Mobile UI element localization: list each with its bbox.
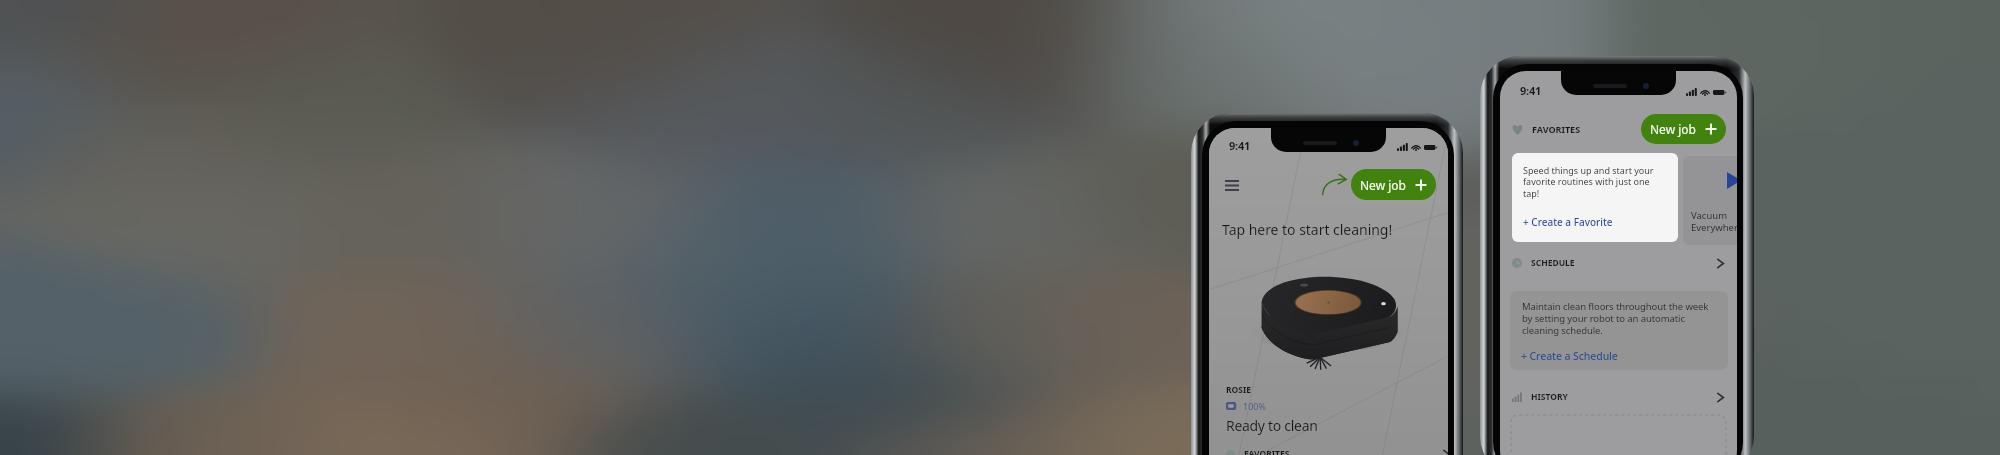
staticText: HISTORY — [1531, 391, 1568, 403]
staticText: + Create a Favorite — [1523, 215, 1613, 229]
staticText: SCHEDULE — [1531, 257, 1575, 269]
button[interactable]: New job — [1641, 114, 1726, 144]
staticText: New job — [1650, 121, 1696, 137]
button[interactable]: New job — [1351, 169, 1436, 200]
staticText: Speed things up and start your favorite … — [1523, 164, 1663, 200]
button[interactable]: Menu — [1225, 174, 1247, 196]
staticText: FAVORITES — [1244, 448, 1290, 455]
other: Start job — [1727, 172, 1737, 189]
staticText: 9:41 — [1520, 83, 1542, 98]
staticText: + Create a Schedule — [1521, 349, 1618, 363]
staticText: Ready to clean — [1226, 416, 1318, 435]
staticText: 9:41 — [1229, 138, 1251, 153]
staticText: 100% — [1243, 400, 1266, 412]
staticText: New job — [1360, 177, 1406, 193]
button[interactable]: Maintain clean floors throughout the wee… — [1510, 291, 1728, 370]
button[interactable]: Speed things up and start your favorite … — [1512, 153, 1678, 242]
staticText: Maintain clean floors throughout the wee… — [1522, 300, 1710, 337]
button[interactable]: HISTORY — [1500, 391, 1737, 403]
staticText: FAVORITES — [1532, 123, 1581, 135]
button[interactable]: FAVORITES — [1226, 448, 1448, 455]
button[interactable]: SCHEDULE — [1500, 257, 1737, 269]
staticText: ROSIE — [1226, 384, 1252, 396]
staticText: Vacuum Everywhere — [1691, 209, 1737, 234]
button[interactable]: Start job — [1683, 156, 1737, 245]
staticText: Tap here to start cleaning! — [1222, 220, 1393, 239]
